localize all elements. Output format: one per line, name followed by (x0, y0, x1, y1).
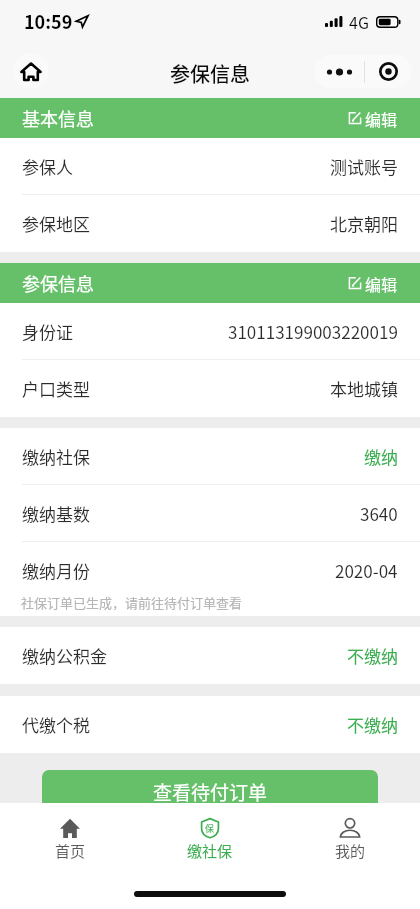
staticText: 参保地区 (22, 211, 90, 236)
staticText: 缴纳月份 (22, 558, 90, 583)
button[interactable]: 参保地区 (0, 195, 420, 252)
button[interactable]: More (314, 55, 364, 88)
staticText: 基本信息 (22, 105, 94, 131)
button[interactable]: 代缴个税 (0, 696, 420, 753)
button[interactable]: 缴纳基数 (0, 485, 420, 542)
staticText: 不缴纳 (347, 712, 398, 737)
button[interactable]: 我的 (280, 818, 420, 863)
staticText: 缴纳社保 (22, 444, 90, 469)
button[interactable]: 编辑 (348, 98, 398, 138)
staticText: 社保订单已生成，请前往待付订单查看 (21, 593, 243, 610)
button[interactable]: 缴纳公积金 (0, 627, 420, 684)
staticText: 参保人 (22, 154, 73, 179)
staticText: 保 (205, 822, 215, 835)
staticText: 3640 (360, 501, 398, 526)
staticText: 4G (349, 10, 369, 33)
staticText: 本地城镇 (330, 376, 398, 401)
staticText: 10:59 (24, 8, 73, 34)
staticText: 参保信息 (170, 59, 250, 88)
button[interactable]: 缴纳月份 (0, 542, 420, 599)
staticText: 参保信息 (22, 270, 94, 296)
staticText: 查看待付订单 (153, 778, 268, 806)
button[interactable]: Close (365, 55, 412, 88)
button[interactable]: 户口类型 (0, 360, 420, 417)
button[interactable]: Home (13, 53, 49, 89)
staticText: 2020-04 (335, 558, 398, 583)
staticText: 代缴个税 (22, 712, 90, 737)
staticText: 测试账号 (330, 154, 398, 179)
button[interactable]: 身份证 (0, 303, 420, 360)
button[interactable]: 首页 (0, 818, 140, 863)
button[interactable]: 参保人 (0, 138, 420, 195)
staticText: 编辑 (365, 272, 398, 295)
staticText: 缴社保 (187, 840, 233, 862)
staticText: 身份证 (22, 319, 73, 344)
staticText: 我的 (335, 840, 366, 862)
staticText: 不缴纳 (347, 643, 398, 668)
button[interactable]: 缴纳社保 (0, 428, 420, 485)
button[interactable]: 查看待付订单 (42, 770, 378, 814)
staticText: 缴纳 (364, 444, 398, 469)
staticText: 缴纳公积金 (22, 643, 107, 668)
button[interactable]: 编辑 (348, 263, 398, 303)
button[interactable]: 保 (140, 818, 280, 863)
staticText: 310113199003220019 (228, 319, 398, 344)
staticText: 首页 (55, 840, 86, 862)
staticText: 缴纳基数 (22, 501, 90, 526)
staticText: 户口类型 (22, 376, 90, 401)
staticText: 北京朝阳 (330, 211, 398, 236)
staticText: 编辑 (365, 107, 398, 130)
